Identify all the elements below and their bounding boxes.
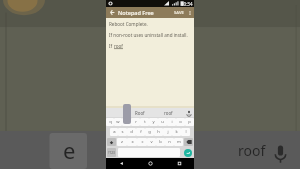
button[interactable]: b: [156, 138, 165, 146]
staticText: l: [185, 129, 187, 135]
button[interactable]: z: [117, 138, 127, 146]
button[interactable]: Recent apps: [165, 158, 194, 169]
staticText: s: [121, 129, 124, 135]
button[interactable]: q: [106, 118, 114, 126]
button[interactable]: s: [118, 128, 127, 136]
staticText: o: [179, 119, 182, 125]
button[interactable]: e: [122, 118, 131, 126]
button[interactable]: Roof: [126, 108, 154, 117]
button[interactable]: ?123: [107, 148, 116, 157]
staticText: k: [175, 129, 178, 135]
staticText: n: [168, 139, 171, 145]
button[interactable]: Enter: [184, 149, 192, 157]
staticText: ?123: [108, 151, 115, 155]
staticText: c: [141, 139, 144, 145]
staticText: q: [109, 119, 112, 125]
button[interactable]: f: [136, 128, 145, 136]
staticText: r: [135, 119, 137, 125]
staticText: Notepad Free: [118, 9, 172, 16]
button[interactable]: Reboot Complete.: [106, 18, 194, 108]
staticText: a: [113, 129, 116, 135]
staticText: y: [152, 119, 155, 125]
button[interactable]: Back: [106, 7, 118, 18]
staticText: i: [171, 119, 173, 125]
staticText: g: [148, 129, 151, 135]
button[interactable]: SAVE: [172, 7, 186, 18]
staticText: b: [159, 139, 162, 145]
button[interactable]: y: [149, 118, 158, 126]
button[interactable]: v: [147, 138, 156, 146]
button[interactable]: roof: [154, 108, 183, 117]
staticText: Roof: [135, 110, 145, 116]
button[interactable]: Back: [106, 158, 136, 169]
button[interactable]: d: [127, 128, 136, 136]
button[interactable]: More options: [186, 7, 194, 18]
staticText: roof: [114, 43, 123, 49]
button[interactable]: c: [137, 138, 147, 146]
button[interactable]: n: [165, 138, 174, 146]
button[interactable]: u: [158, 118, 167, 126]
button[interactable]: g: [145, 128, 154, 136]
staticText: x: [131, 139, 134, 145]
staticText: f: [140, 129, 142, 135]
staticText: If non-root uses uninstall and install.: [109, 32, 188, 38]
staticText: u: [161, 119, 164, 125]
staticText: d: [130, 129, 133, 135]
button[interactable]: i: [167, 118, 176, 126]
button[interactable]: w: [114, 118, 122, 126]
staticText: e: [125, 119, 128, 125]
staticText: t: [144, 119, 146, 125]
button[interactable]: x: [127, 138, 137, 146]
button[interactable]: l: [181, 128, 190, 136]
button[interactable]: k: [172, 128, 181, 136]
button[interactable]: Backspace: [184, 138, 193, 146]
button[interactable]: o: [176, 118, 185, 126]
button[interactable]: t: [140, 118, 149, 126]
staticText: v: [150, 139, 153, 145]
button[interactable]: j: [163, 128, 172, 136]
staticText: m: [177, 139, 181, 145]
staticText: If: [109, 43, 114, 49]
button[interactable]: h: [154, 128, 163, 136]
button[interactable]: r: [131, 118, 140, 126]
staticText: w: [116, 119, 120, 125]
staticText: Reboot Complete.: [109, 21, 148, 27]
button[interactable]: m: [174, 138, 183, 146]
staticText: 10:34: [181, 1, 193, 7]
staticText: h: [157, 129, 160, 135]
button[interactable]: Home: [136, 158, 165, 169]
button[interactable]: Shift: [107, 138, 116, 146]
staticText: SAVE: [174, 10, 184, 16]
staticText: roof: [164, 110, 173, 116]
staticText: z: [121, 139, 123, 145]
staticText: roof: [238, 141, 266, 160]
staticText: p: [188, 119, 191, 125]
button[interactable]: a: [110, 128, 118, 136]
button[interactable]: p: [185, 118, 194, 126]
staticText: j: [167, 129, 169, 135]
staticText: e: [63, 135, 76, 165]
button[interactable]: Voice input: [183, 108, 194, 117]
